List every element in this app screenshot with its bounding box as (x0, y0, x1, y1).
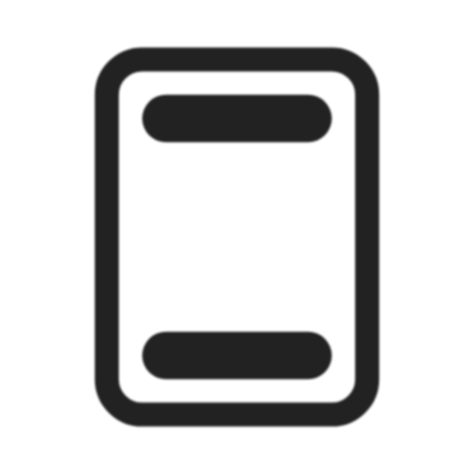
button[interactable]: Reader page (0, 0, 474, 474)
